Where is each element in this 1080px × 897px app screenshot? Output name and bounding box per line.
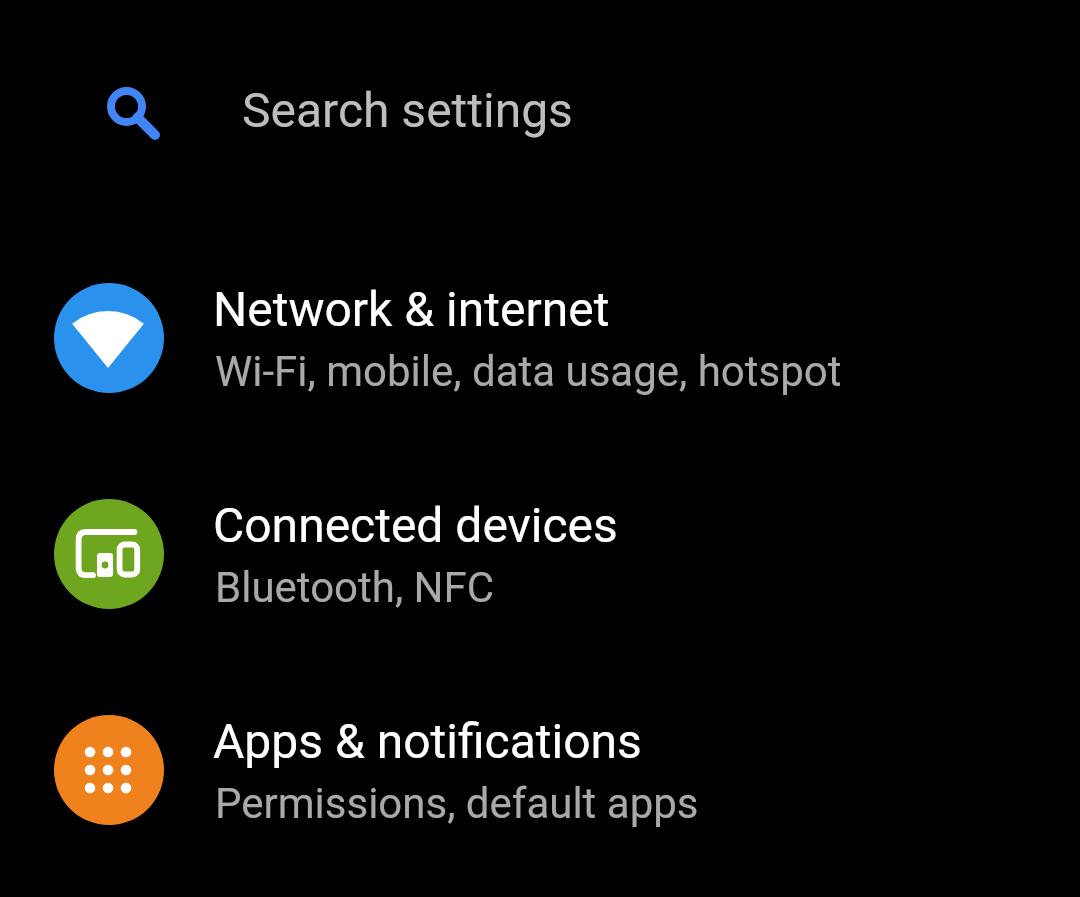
button[interactable]: Network & internet [0, 230, 1080, 446]
button[interactable]: Connected devices [0, 446, 1080, 662]
staticText: Network & internet [213, 281, 610, 337]
staticText: Apps & notifications [213, 713, 642, 769]
staticText: Search settings [242, 82, 573, 138]
button[interactable]: Search settings [0, 40, 1080, 185]
staticText: Connected devices [213, 497, 618, 553]
staticText: Bluetooth, NFC [215, 563, 495, 612]
staticText: Permissions, default apps [215, 779, 699, 828]
staticText: Wi-Fi, mobile, data usage, hotspot [215, 347, 842, 396]
button[interactable]: Apps & notifications [0, 662, 1080, 878]
